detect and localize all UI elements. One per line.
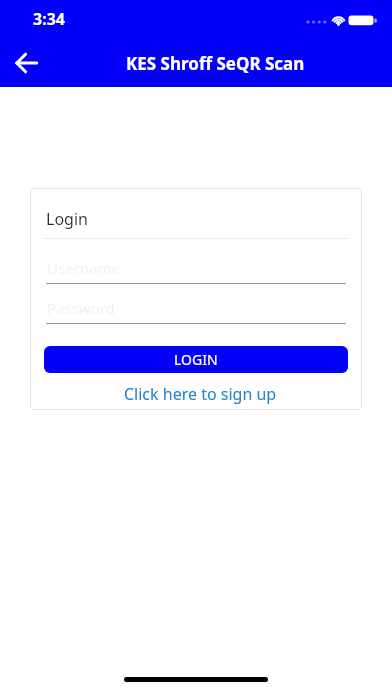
staticText: Click here to sign up <box>124 383 277 405</box>
staticText: LOGIN <box>174 350 218 369</box>
button[interactable]: LOGIN <box>44 346 348 373</box>
button[interactable]: Username <box>46 250 346 284</box>
staticText: 3:34 <box>33 8 65 30</box>
staticText: Username <box>47 258 120 278</box>
button[interactable]: Click here to sign up <box>124 383 277 405</box>
staticText: Login <box>46 208 88 230</box>
staticText: KES Shroff SeQR Scan <box>126 52 305 75</box>
staticText: Password <box>47 298 115 318</box>
button[interactable]: Password <box>46 290 346 324</box>
button[interactable] <box>6 43 46 83</box>
